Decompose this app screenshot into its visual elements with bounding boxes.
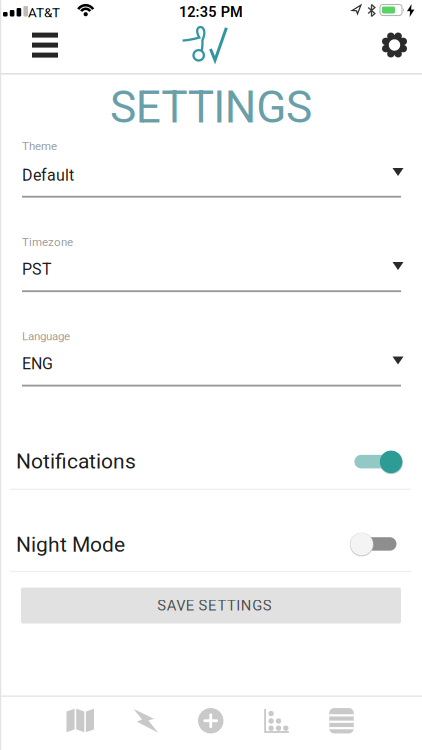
staticText: SAVE SETTINGS [157, 597, 272, 614]
staticText: AT&T [28, 5, 60, 20]
staticText: Night Mode [16, 532, 125, 557]
staticText: 12:35 PM [179, 3, 243, 20]
button[interactable]: Map [66, 708, 94, 732]
staticText: Notifications [16, 449, 136, 473]
button[interactable]: ENG [22, 350, 401, 386]
button[interactable]: Night Mode [352, 532, 400, 556]
button[interactable]: Add [198, 708, 223, 733]
staticText: Theme [22, 139, 57, 153]
button[interactable]: Settings [381, 32, 407, 58]
button[interactable]: Flash [131, 708, 159, 734]
button[interactable]: Stats [262, 707, 289, 734]
staticText: SETTINGS [110, 81, 312, 133]
staticText: Timezone [22, 235, 73, 249]
button[interactable]: SAVE SETTINGS [21, 587, 401, 623]
button[interactable]: Default [22, 162, 401, 198]
button[interactable]: List [329, 708, 354, 733]
staticText: PST [22, 260, 52, 279]
staticText: ENG [22, 354, 53, 373]
button[interactable]: PST [22, 256, 401, 292]
button[interactable]: Notifications [354, 450, 402, 474]
staticText: Language [22, 330, 70, 343]
button[interactable]: Menu [32, 33, 58, 58]
staticText: Default [22, 166, 74, 185]
